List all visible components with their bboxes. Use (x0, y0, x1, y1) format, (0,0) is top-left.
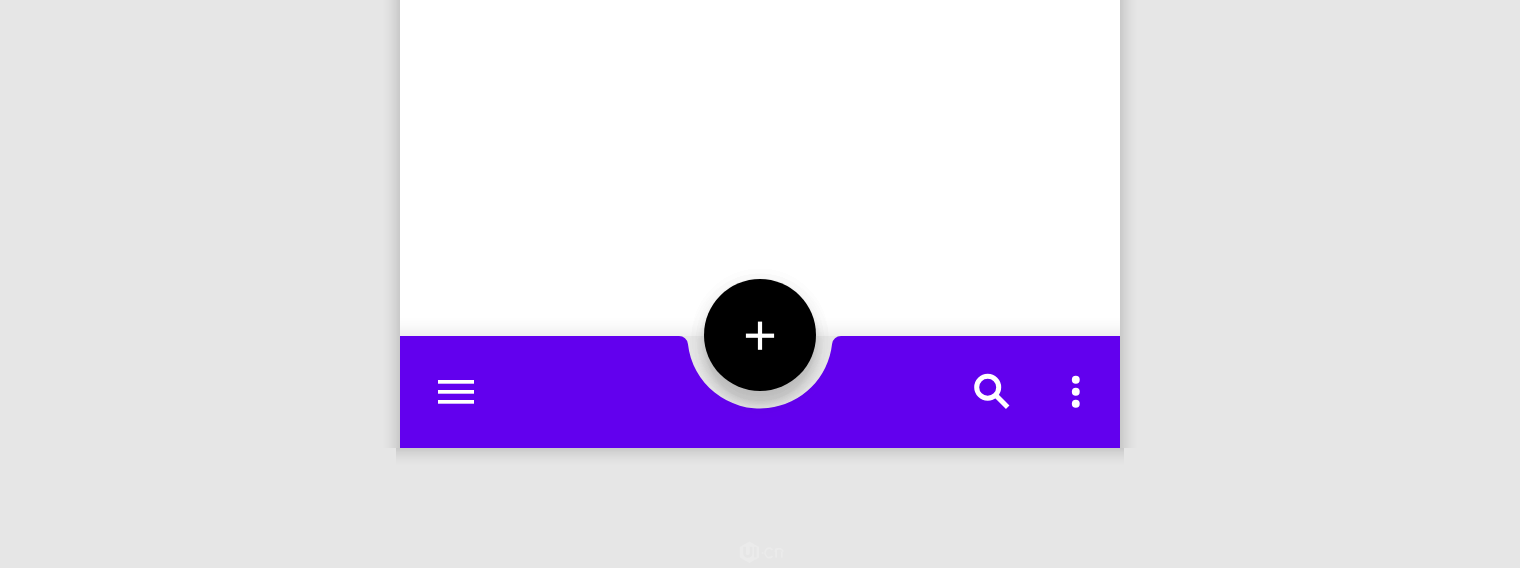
button[interactable]: Add (704, 279, 816, 391)
button[interactable]: Navigation menu (432, 368, 480, 416)
button[interactable]: Search (964, 364, 1012, 412)
button[interactable]: More options (1052, 368, 1100, 416)
